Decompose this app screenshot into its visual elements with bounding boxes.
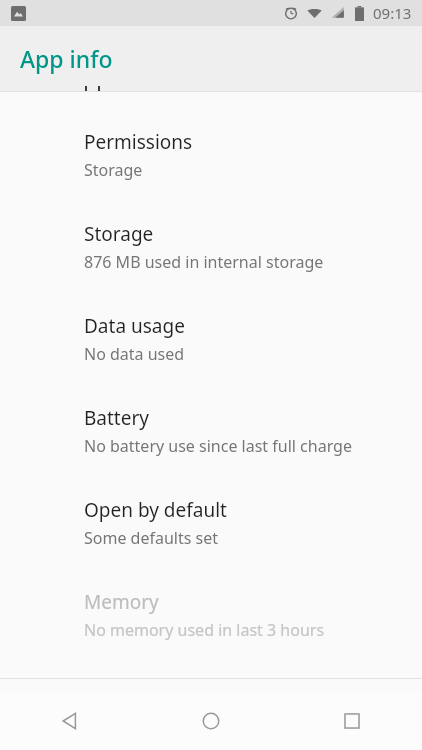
staticText: No battery use since last full charge	[84, 435, 352, 457]
button[interactable]: Permissions	[0, 126, 422, 218]
staticText: Battery	[84, 405, 149, 431]
staticText: Data usage	[84, 313, 185, 339]
staticText: No memory used in last 3 hours	[84, 619, 325, 641]
staticText: Permissions	[84, 129, 193, 155]
button[interactable]: Battery	[0, 402, 422, 494]
button[interactable]: Home	[140, 692, 281, 750]
staticText: App info	[20, 43, 113, 74]
button[interactable]: Recent apps	[281, 692, 422, 750]
staticText: Storage	[84, 221, 154, 247]
button[interactable]: Back	[0, 692, 140, 750]
button[interactable]: Data usage	[0, 310, 422, 402]
staticText: Some defaults set	[84, 527, 219, 549]
button[interactable]: Open by default	[0, 494, 422, 586]
button: Memory	[0, 586, 422, 678]
staticText: Storage	[84, 159, 143, 181]
staticText: 09:13	[373, 3, 412, 23]
button[interactable]: Storage	[0, 218, 422, 310]
staticText: Open by default	[84, 497, 227, 523]
staticText: No data used	[84, 343, 185, 365]
staticText: Memory	[84, 589, 159, 615]
staticText: 876 MB used in internal storage	[84, 251, 324, 273]
